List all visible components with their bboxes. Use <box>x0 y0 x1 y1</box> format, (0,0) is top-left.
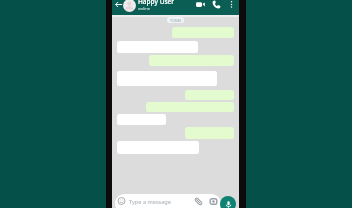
staticText: Happy User <box>138 0 175 6</box>
button[interactable]: Voice message <box>220 196 236 208</box>
button[interactable]: Call <box>211 0 222 10</box>
staticText: online <box>138 6 151 12</box>
button[interactable]: More options <box>226 0 236 9</box>
staticText: Type a message <box>129 198 171 206</box>
button[interactable]: Back <box>112 0 123 10</box>
button[interactable]: Type a message <box>115 194 221 208</box>
button[interactable]: Video call <box>195 0 206 10</box>
staticText: TODAY <box>170 18 182 23</box>
button[interactable]: Profile photo <box>123 0 136 12</box>
